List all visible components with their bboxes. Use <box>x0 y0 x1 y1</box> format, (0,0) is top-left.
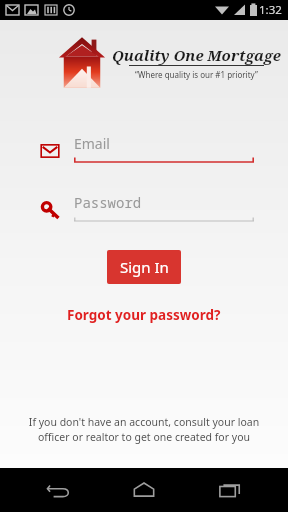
other: Password <box>38 198 62 222</box>
staticText: Sign In <box>120 257 169 277</box>
button[interactable]: Recents <box>202 468 258 512</box>
staticText: If you don't have an account, consult yo… <box>26 415 262 444</box>
button[interactable]: Home <box>116 468 172 512</box>
button[interactable]: Sign In <box>107 250 181 284</box>
button[interactable]: Password <box>38 193 254 226</box>
staticText: Password <box>74 193 142 212</box>
staticText: 1:32 <box>259 2 282 18</box>
staticText: Email <box>74 134 110 153</box>
button[interactable]: Email <box>38 134 254 167</box>
staticText: Quality One Mortgage <box>112 45 281 65</box>
staticText: Forgot your password? <box>67 306 221 324</box>
other: Email <box>38 139 62 163</box>
button[interactable]: Back <box>30 468 86 512</box>
button[interactable]: Forgot your password? <box>63 302 225 328</box>
staticText: “Where quality is our #1 priority” <box>135 69 258 80</box>
